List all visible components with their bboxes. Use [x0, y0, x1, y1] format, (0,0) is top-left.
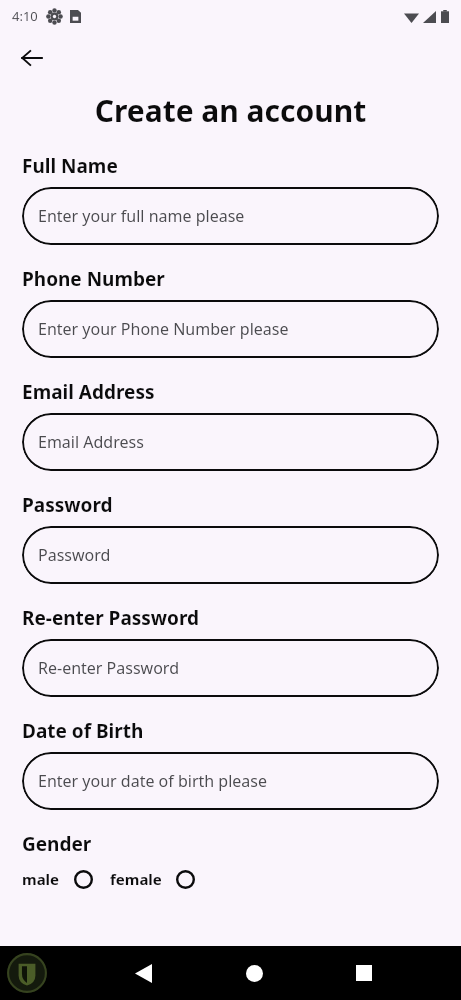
button[interactable]: female: [110, 869, 195, 889]
staticText: Gender: [22, 831, 92, 857]
button[interactable]: Home: [230, 949, 278, 997]
staticText: Email Address: [38, 431, 144, 453]
staticText: Date of Birth: [22, 718, 144, 744]
button[interactable]: Email Address: [22, 413, 439, 471]
staticText: Email Address: [22, 379, 155, 405]
button[interactable]: Enter your date of birth please: [22, 752, 439, 810]
button[interactable]: Enter your full name please: [22, 187, 439, 245]
staticText: male: [22, 869, 60, 889]
staticText: female: [110, 869, 162, 889]
button[interactable]: Password: [22, 526, 439, 584]
staticText: Re-enter Password: [22, 605, 200, 631]
staticText: Create an account: [0, 90, 461, 131]
staticText: Re-enter Password: [38, 657, 179, 679]
staticText: Password: [22, 492, 113, 518]
staticText: 4:10: [12, 7, 38, 25]
button[interactable]: Back: [12, 38, 52, 78]
staticText: Enter your Phone Number please: [38, 318, 289, 340]
staticText: Password: [38, 544, 111, 566]
button[interactable]: Enter your Phone Number please: [22, 300, 439, 358]
staticText: Enter your full name please: [38, 205, 245, 227]
staticText: Enter your date of birth please: [38, 770, 268, 792]
button[interactable]: male: [22, 869, 93, 889]
button[interactable]: Back: [119, 949, 167, 997]
staticText: Phone Number: [22, 266, 165, 292]
button[interactable]: Re-enter Password: [22, 639, 439, 697]
button[interactable]: Recent apps: [340, 949, 388, 997]
staticText: Full Name: [22, 153, 118, 179]
